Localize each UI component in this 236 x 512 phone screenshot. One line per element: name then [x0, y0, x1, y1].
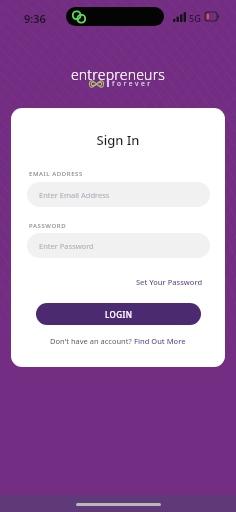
other: Live activity: [66, 7, 164, 26]
staticText: 9:36: [24, 11, 46, 26]
staticText: Enter Email Address: [39, 190, 110, 200]
button[interactable]: Set Your Password: [134, 275, 205, 289]
button[interactable]: Enter Password: [27, 233, 210, 258]
button[interactable]: Enter Email Address: [27, 182, 210, 207]
staticText: LOGIN: [105, 309, 133, 320]
staticText: PASSWORD: [29, 222, 67, 230]
staticText: Don't have an account?: [50, 336, 134, 346]
button[interactable]: LOGIN: [36, 303, 201, 325]
staticText: forever: [112, 79, 153, 88]
button[interactable]: Find Out More: [134, 336, 186, 346]
staticText: entrepreneurs: [0, 65, 236, 84]
staticText: Enter Password: [39, 241, 94, 251]
staticText: EMAIL ADDRESS: [29, 170, 83, 178]
staticText: 5G: [189, 12, 201, 24]
staticText: Sign In: [11, 131, 225, 149]
